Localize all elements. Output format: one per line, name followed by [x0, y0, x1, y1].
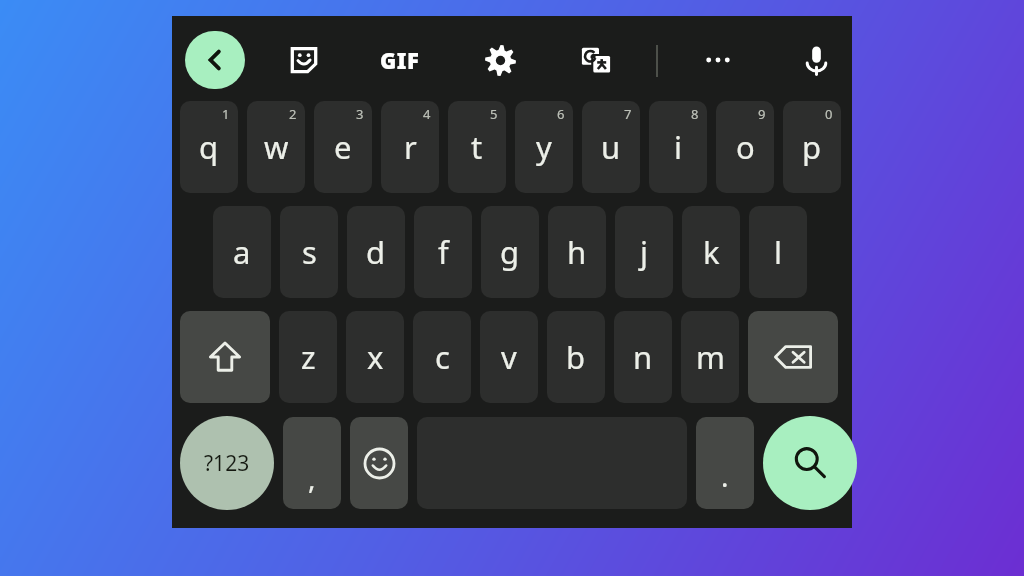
- button[interactable]: a: [213, 206, 271, 298]
- staticText: k: [703, 231, 720, 273]
- button[interactable]: k: [682, 206, 740, 298]
- staticText: a: [233, 231, 251, 273]
- staticText: ?123: [204, 449, 250, 478]
- button[interactable]: s: [280, 206, 338, 298]
- button[interactable]: l: [749, 206, 807, 298]
- staticText: l: [774, 231, 782, 273]
- button[interactable]: w: [247, 101, 305, 193]
- button[interactable]: n: [614, 311, 672, 403]
- staticText: 8: [691, 105, 699, 123]
- staticText: p: [802, 126, 822, 168]
- button[interactable]: i: [649, 101, 707, 193]
- staticText: j: [640, 231, 648, 273]
- button[interactable]: Back: [185, 31, 245, 89]
- staticText: t: [471, 126, 483, 168]
- button[interactable]: f: [414, 206, 472, 298]
- button[interactable]: t: [448, 101, 506, 193]
- staticText: r: [404, 126, 417, 168]
- staticText: GIF: [380, 45, 420, 75]
- staticText: y: [536, 126, 552, 168]
- staticText: w: [264, 126, 289, 168]
- button[interactable]: c: [413, 311, 471, 403]
- button[interactable]: b: [547, 311, 605, 403]
- button[interactable]: Emoji: [350, 417, 408, 509]
- button[interactable]: Shift: [180, 311, 270, 403]
- staticText: v: [501, 336, 517, 378]
- button[interactable]: x: [346, 311, 404, 403]
- staticText: s: [302, 231, 317, 273]
- button[interactable]: Settings: [472, 32, 528, 88]
- button[interactable]: Backspace: [748, 311, 838, 403]
- staticText: q: [199, 126, 219, 168]
- staticText: 7: [624, 105, 632, 123]
- staticText: i: [674, 126, 682, 168]
- button[interactable]: d: [347, 206, 405, 298]
- button[interactable]: Translate: [568, 32, 624, 88]
- staticText: b: [566, 336, 586, 378]
- button[interactable]: u: [582, 101, 640, 193]
- button[interactable]: y: [515, 101, 573, 193]
- staticText: x: [367, 336, 384, 378]
- staticText: o: [736, 126, 755, 168]
- button[interactable]: h: [548, 206, 606, 298]
- staticText: ,: [308, 459, 316, 497]
- button[interactable]: More options: [690, 32, 746, 88]
- button[interactable]: GIF keyboard: [372, 32, 428, 88]
- staticText: 5: [490, 105, 498, 123]
- button[interactable]: Stickers: [276, 32, 332, 88]
- staticText: m: [696, 336, 725, 378]
- staticText: u: [601, 126, 621, 168]
- staticText: f: [438, 231, 449, 273]
- button[interactable]: ?123: [180, 416, 274, 510]
- staticText: 1: [222, 105, 230, 123]
- button[interactable]: ,: [283, 417, 341, 509]
- staticText: d: [366, 231, 386, 273]
- button[interactable]: o: [716, 101, 774, 193]
- button[interactable]: g: [481, 206, 539, 298]
- staticText: z: [301, 336, 316, 378]
- button[interactable]: e: [314, 101, 372, 193]
- staticText: n: [633, 336, 653, 378]
- staticText: h: [567, 231, 587, 273]
- staticText: c: [435, 336, 450, 378]
- staticText: g: [500, 231, 520, 273]
- staticText: 3: [356, 105, 364, 123]
- staticText: e: [334, 126, 352, 168]
- button[interactable]: Voice input: [788, 32, 844, 88]
- staticText: 6: [557, 105, 565, 123]
- button[interactable]: Search: [763, 416, 857, 510]
- button[interactable]: v: [480, 311, 538, 403]
- button[interactable]: m: [681, 311, 739, 403]
- button[interactable]: .: [696, 417, 754, 509]
- staticText: .: [721, 457, 729, 495]
- button[interactable]: q: [180, 101, 238, 193]
- button[interactable]: j: [615, 206, 673, 298]
- button[interactable]: r: [381, 101, 439, 193]
- button[interactable]: p: [783, 101, 841, 193]
- staticText: 9: [758, 105, 766, 123]
- staticText: 2: [289, 105, 297, 123]
- staticText: 4: [423, 105, 431, 123]
- staticText: 0: [825, 105, 833, 123]
- button[interactable]: z: [279, 311, 337, 403]
